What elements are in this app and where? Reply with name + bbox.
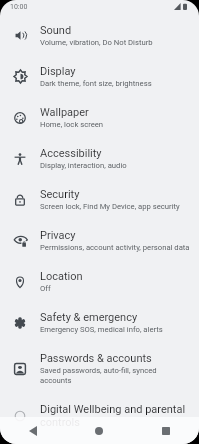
- staticText: Accessibility: [40, 147, 102, 160]
- staticText: Wallpaper: [40, 106, 89, 119]
- staticText: Safety & emergency: [40, 311, 138, 324]
- button[interactable]: Home: [89, 421, 109, 441]
- button[interactable]: Back: [23, 421, 43, 441]
- button[interactable]: Recent apps: [156, 421, 176, 441]
- staticText: Location: [40, 270, 83, 283]
- staticText: Emergency SOS, medical info, alerts: [40, 324, 163, 334]
- staticText: Security: [40, 188, 80, 201]
- button[interactable]: Sound: [0, 24, 199, 47]
- staticText: Off: [40, 283, 51, 293]
- button[interactable]: Accessibility: [0, 147, 199, 170]
- staticText: Privacy: [40, 229, 76, 242]
- staticText: Permissions, account activity, personal …: [40, 242, 190, 252]
- staticText: Display: [40, 65, 76, 78]
- button[interactable]: Privacy: [0, 229, 199, 252]
- button[interactable]: Security: [0, 188, 199, 211]
- staticText: Passwords & accounts: [40, 352, 152, 365]
- staticText: Dark theme, font size, brightness: [40, 78, 152, 88]
- staticText: Volume, vibration, Do Not Disturb: [40, 37, 153, 47]
- button[interactable]: Safety & emergency: [0, 311, 199, 334]
- button[interactable]: Location: [0, 270, 199, 293]
- staticText: Home, lock screen: [40, 119, 104, 129]
- button[interactable]: Passwords & accounts: [0, 352, 199, 385]
- staticText: 10:00: [10, 3, 28, 11]
- staticText: Saved passwords, auto-fill, synced accou…: [40, 365, 157, 385]
- staticText: Digital Wellbeing and parental controls: [40, 403, 186, 429]
- button[interactable]: Display: [0, 65, 199, 88]
- button[interactable]: Wallpaper: [0, 106, 199, 129]
- staticText: Screen lock, Find My Device, app securit…: [40, 201, 180, 211]
- staticText: Display, interaction, audio: [40, 160, 127, 170]
- button[interactable]: Digital Wellbeing and parental controls: [0, 403, 199, 429]
- staticText: Sound: [40, 24, 72, 37]
